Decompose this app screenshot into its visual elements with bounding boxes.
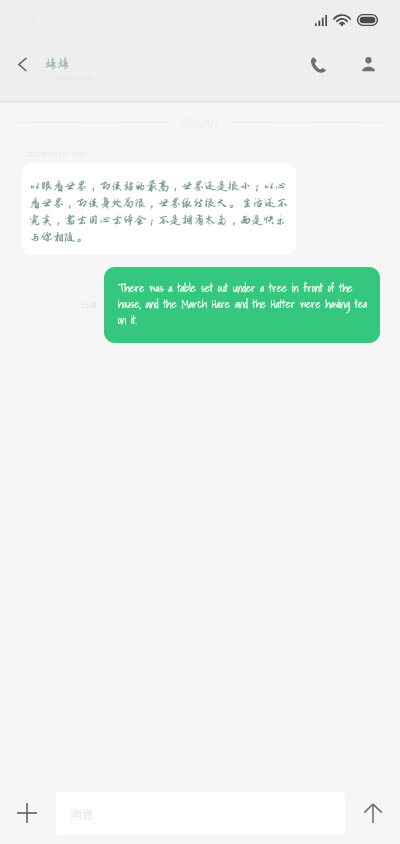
staticText: 以眼看世界，即使站的最高，世界还是很小；以心看世界，即使身处局限，世界依然很大。…	[29, 180, 289, 244]
button[interactable]: There was a table set out under a tree i…	[104, 267, 380, 343]
staticText: 婧婧	[44, 57, 70, 71]
button[interactable]: Send	[353, 793, 393, 833]
button[interactable]: Call	[296, 42, 340, 86]
staticText: 消息	[70, 805, 95, 822]
button[interactable]: Contact profile	[346, 42, 390, 86]
staticText: 已读	[81, 299, 97, 311]
button[interactable]: Back	[0, 42, 44, 86]
staticText: 2026/4/1	[180, 115, 220, 129]
staticText: 2026年4月1日 14:34	[26, 149, 87, 159]
staticText: There was a table set out under a tree i…	[118, 279, 368, 328]
button[interactable]: Add attachment	[7, 793, 47, 833]
button[interactable]: 以眼看世界，即使站的最高，世界还是很小；以心看世界，即使身处局限，世界依然很大。…	[22, 163, 296, 255]
